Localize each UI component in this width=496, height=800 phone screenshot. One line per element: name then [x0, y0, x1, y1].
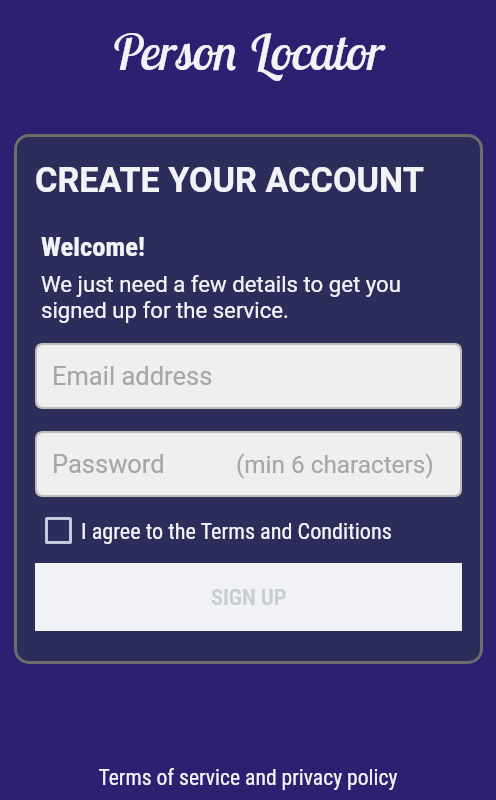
button[interactable]: SIGN UP: [35, 563, 462, 631]
staticText: (min 6 characters): [236, 450, 434, 478]
staticText: Welcome!: [41, 231, 145, 262]
staticText: We just need a few details to get you si…: [41, 271, 401, 323]
button[interactable]: Terms of service and privacy policy: [0, 765, 496, 800]
staticText: Email address: [52, 361, 213, 391]
button[interactable]: I agree to the Terms and Conditions: [45, 517, 462, 544]
staticText: Person Locator: [0, 20, 496, 83]
staticText: I agree to the Terms and Conditions: [81, 518, 392, 544]
staticText: Password: [52, 449, 165, 479]
button[interactable]: Password: [37, 433, 460, 495]
staticText: SIGN UP: [211, 584, 287, 610]
staticText: CREATE YOUR ACCOUNT: [35, 160, 424, 200]
button[interactable]: Email address: [37, 345, 460, 407]
